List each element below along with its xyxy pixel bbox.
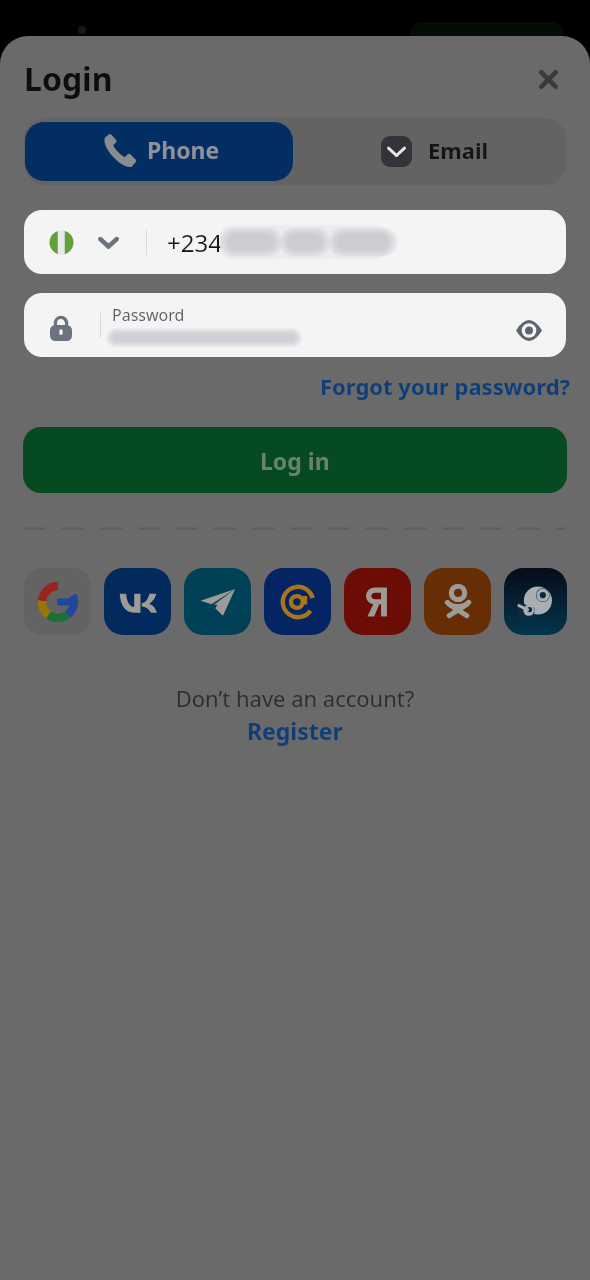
button[interactable]: Sign in [424, 568, 491, 635]
staticText: Login [24, 57, 113, 101]
button[interactable]: Sign in [264, 568, 331, 635]
staticText: Email [428, 135, 489, 165]
button[interactable]: Register [225, 714, 365, 746]
staticText: Register [247, 715, 343, 746]
staticText: Log in [260, 445, 330, 476]
button[interactable]: Forgot your password? [300, 369, 572, 403]
button[interactable]: Select country code [49, 210, 119, 274]
staticText: Phone [147, 134, 220, 165]
staticText: Password [112, 304, 185, 326]
button[interactable]: Sign in [24, 568, 91, 635]
button[interactable]: Show password [502, 308, 556, 352]
button[interactable]: Phone [25, 122, 293, 181]
staticText: +234 [167, 226, 222, 259]
button[interactable]: Email [303, 122, 566, 181]
button[interactable]: Sign in [184, 568, 251, 635]
button[interactable]: Log in [23, 427, 567, 493]
button[interactable]: Sign in [344, 568, 411, 635]
staticText: Forgot your password? [320, 371, 571, 401]
button[interactable]: Sign in [104, 568, 171, 635]
staticText: Don’t have an account? [0, 683, 590, 713]
button[interactable]: Sign in [504, 568, 567, 635]
button[interactable]: Close [529, 60, 568, 99]
